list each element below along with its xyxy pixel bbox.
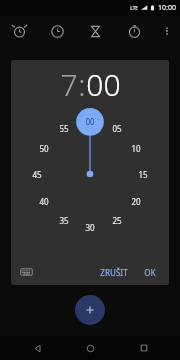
staticText: 40 xyxy=(39,196,49,207)
staticText: 45 xyxy=(32,169,42,180)
button[interactable]: 7 xyxy=(60,64,78,105)
button[interactable]: Switch to text input xyxy=(18,264,34,280)
staticText: 7 xyxy=(60,64,78,105)
staticText: 15 xyxy=(138,169,148,180)
button[interactable]: Clock xyxy=(38,16,76,46)
staticText: 10:00 xyxy=(158,3,176,13)
staticText: 50 xyxy=(39,143,49,154)
staticText: 30 xyxy=(85,222,95,233)
staticText: 00 xyxy=(86,64,121,105)
button[interactable]: 00 xyxy=(86,64,121,105)
button[interactable]: Back xyxy=(20,336,54,360)
staticText: 00 xyxy=(85,116,95,127)
button[interactable]: Home xyxy=(73,336,107,360)
button[interactable]: Timer xyxy=(76,16,115,46)
staticText: 10 xyxy=(131,143,141,154)
button[interactable]: Recents xyxy=(127,336,161,360)
button[interactable]: Stopwatch xyxy=(115,16,154,46)
staticText: 05 xyxy=(112,123,122,134)
button[interactable]: ZRUŠIT xyxy=(94,264,134,281)
staticText: ZRUŠIT xyxy=(100,267,128,278)
button[interactable]: More options xyxy=(154,16,180,46)
button[interactable]: Add alarm xyxy=(75,295,105,325)
staticText: 55 xyxy=(59,123,69,134)
staticText: 35 xyxy=(59,215,69,226)
staticText: 20 xyxy=(131,196,141,207)
staticText: 25 xyxy=(112,215,122,226)
staticText: LTE xyxy=(130,5,138,11)
button[interactable]: OK xyxy=(138,264,162,281)
button[interactable]: Alarm xyxy=(0,16,38,46)
staticText: OK xyxy=(144,267,156,278)
staticText: : xyxy=(78,64,86,105)
